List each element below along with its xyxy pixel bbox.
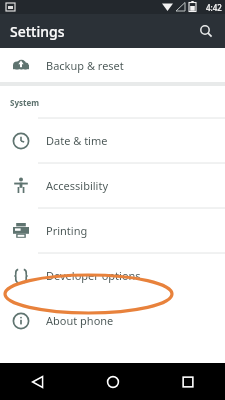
staticText: Accessibility: [46, 178, 109, 193]
staticText: Printing: [46, 223, 88, 238]
button[interactable]: Date & time: [0, 118, 225, 163]
staticText: About phone: [46, 313, 114, 328]
staticText: System: [10, 97, 40, 108]
staticText: Date & time: [46, 133, 108, 148]
button[interactable]: Home: [75, 363, 150, 400]
staticText: Backup & reset: [46, 58, 124, 73]
button[interactable]: Search: [193, 18, 219, 44]
button[interactable]: Back: [0, 363, 75, 400]
staticText: Settings: [10, 22, 65, 41]
button[interactable]: Accessibility: [0, 163, 225, 208]
button[interactable]: About phone: [0, 298, 225, 343]
staticText: 4:42: [206, 2, 222, 13]
button[interactable]: Developer options: [0, 253, 225, 298]
button[interactable]: Backup & reset: [0, 48, 225, 82]
button[interactable]: Recent apps: [150, 363, 225, 400]
button[interactable]: Printing: [0, 208, 225, 253]
staticText: Developer options: [46, 268, 141, 283]
